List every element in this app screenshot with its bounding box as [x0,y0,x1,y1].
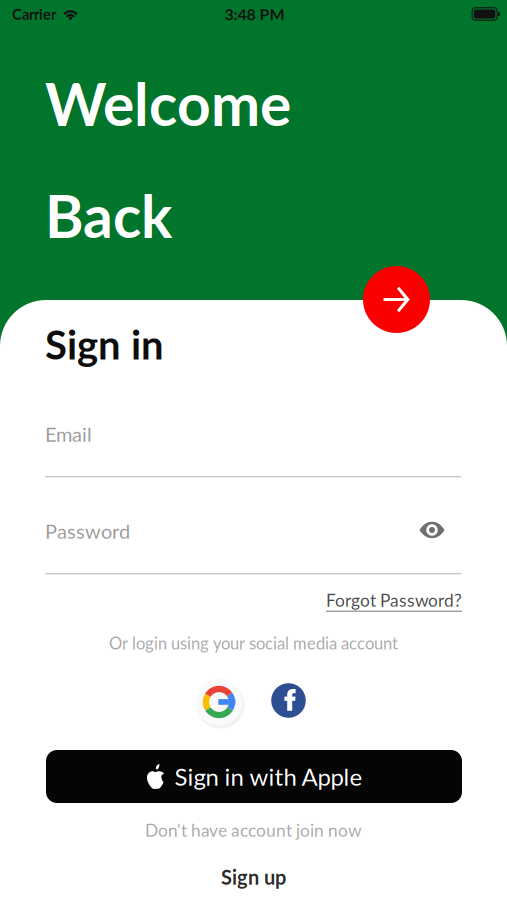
button[interactable]: Forgot Password? [312,589,462,611]
button[interactable]: Show password [419,521,445,539]
staticText: Don't have account join now [145,820,362,840]
button[interactable]: Sign in with Google [195,678,244,727]
staticText: Sign in with Apple [174,762,362,791]
staticText: Email [45,422,92,446]
staticText: Welcome [45,68,291,138]
staticText: Forgot Password? [326,590,462,610]
staticText: Sign in [45,320,164,368]
button[interactable]: Sign up [0,866,507,888]
staticText: Sign up [221,865,286,889]
button[interactable]: Sign in with Apple [46,750,462,803]
button[interactable]: Sign in with Facebook [271,683,306,718]
staticText: Carrier [12,5,56,23]
button[interactable]: Continue [363,266,430,333]
staticText: Or login using your social media account [109,633,398,653]
staticText: 3:48 PM [224,4,284,24]
staticText: Password [45,519,130,543]
staticText: Back [45,180,172,250]
